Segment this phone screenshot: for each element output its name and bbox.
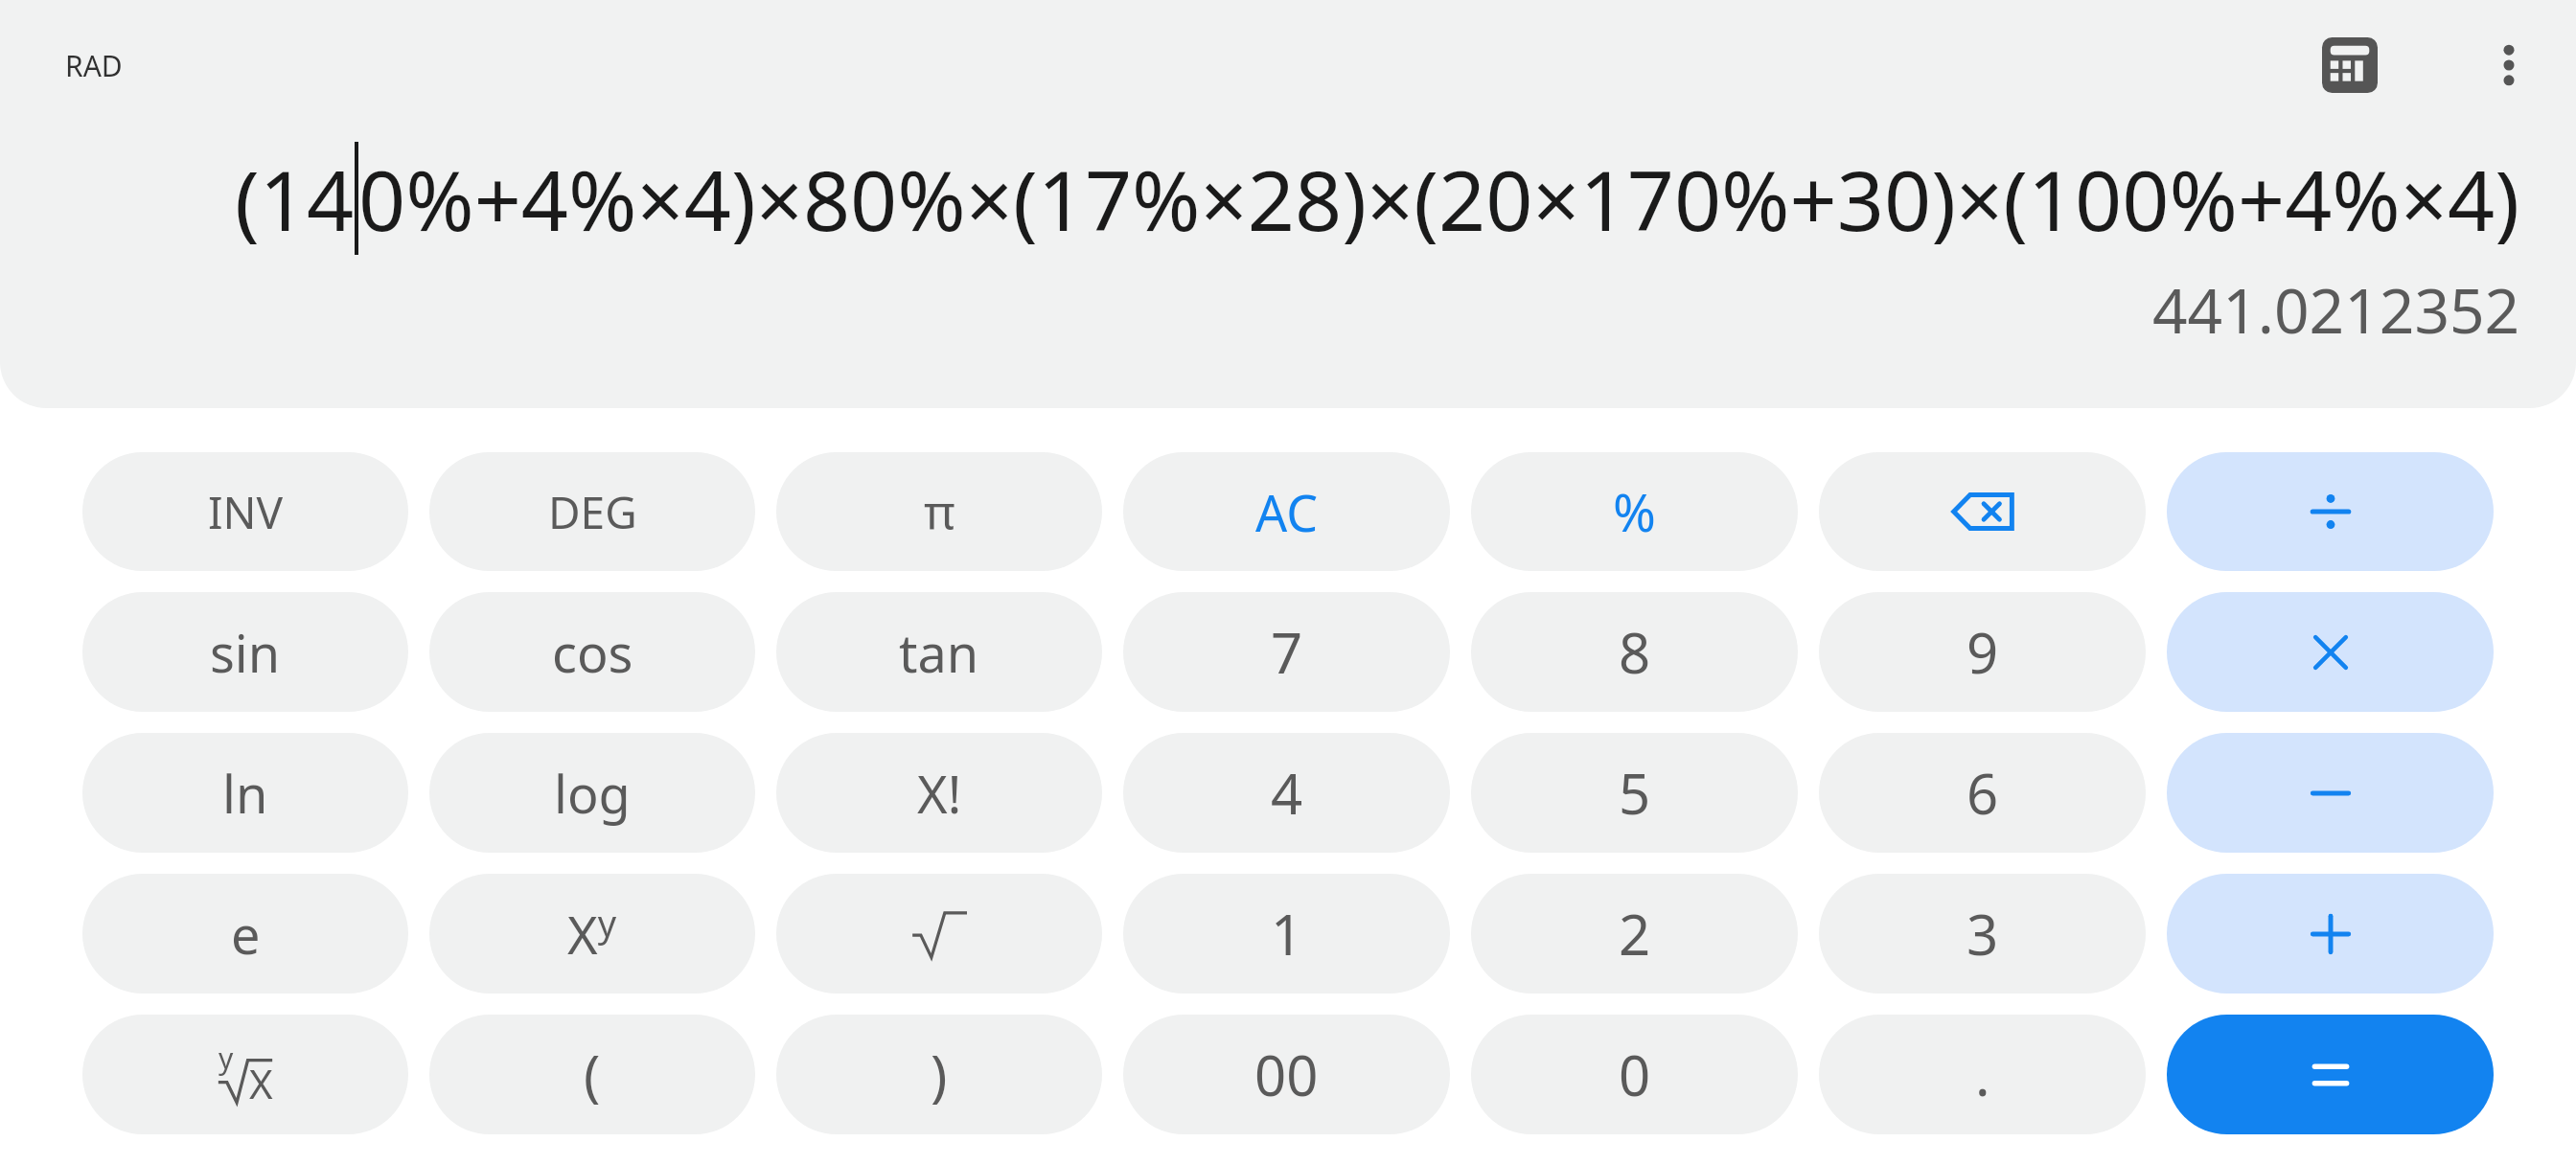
button[interactable]: ( (429, 1015, 755, 1134)
button[interactable]: 0 (1471, 1015, 1798, 1134)
button[interactable]: More options (2471, 27, 2547, 103)
button[interactable]: X! (776, 733, 1102, 853)
staticText: cos (552, 617, 633, 688)
button[interactable]: X to the power of Y (429, 874, 755, 994)
staticText: e (231, 899, 261, 970)
button[interactable]: Minus (2167, 733, 2494, 853)
button[interactable]: e (82, 874, 408, 994)
button[interactable]: Backspace (1819, 452, 2146, 571)
staticText: . (1975, 1037, 1990, 1112)
button[interactable]: cos (429, 592, 755, 712)
button[interactable]: % (1471, 452, 1798, 571)
button[interactable]: 00 (1123, 1015, 1450, 1134)
staticText: AC (1255, 478, 1319, 546)
staticText: log (554, 758, 631, 829)
button[interactable]: 1 (1123, 874, 1450, 994)
staticText: sin (210, 617, 281, 688)
staticText: 1 (1271, 896, 1303, 971)
button[interactable]: sin (82, 592, 408, 712)
button[interactable]: Square root (776, 874, 1102, 994)
staticText: 9 (1966, 614, 1999, 690)
staticText: ( (584, 1037, 601, 1112)
staticText: (14 (235, 143, 355, 255)
button[interactable]: Y-th root of X (82, 1015, 408, 1134)
staticText: 2 (1619, 896, 1651, 971)
staticText: Xy (567, 898, 617, 970)
button[interactable]: 5 (1471, 733, 1798, 853)
button[interactable]: 7 (1123, 592, 1450, 712)
button[interactable]: . (1819, 1015, 2146, 1134)
staticText: 8 (1619, 614, 1651, 690)
button[interactable]: INV (82, 452, 408, 571)
button[interactable]: 9 (1819, 592, 2146, 712)
button[interactable]: RAD (59, 42, 128, 89)
staticText: y (218, 1039, 234, 1078)
button[interactable]: 4 (1123, 733, 1450, 853)
staticText: 0 (1619, 1037, 1651, 1112)
staticText: 6 (1966, 755, 1999, 831)
staticText: ln (222, 758, 268, 829)
staticText: tan (899, 617, 979, 688)
staticText: DEG (548, 482, 637, 542)
staticText: X (249, 1056, 273, 1110)
staticText: RAD (65, 46, 123, 85)
button[interactable]: Plus (2167, 874, 2494, 994)
button[interactable]: 6 (1819, 733, 2146, 853)
staticText: 4 (1271, 755, 1303, 831)
staticText: 0%+4%×4)×80%×(17%×28)×(20×170%+30)×(100%… (358, 143, 2520, 255)
staticText: 5 (1619, 755, 1651, 831)
staticText: INV (208, 482, 284, 542)
button[interactable]: 3 (1819, 874, 2146, 994)
button[interactable]: π (776, 452, 1102, 571)
button[interactable]: 8 (1471, 592, 1798, 712)
button[interactable]: DEG (429, 452, 755, 571)
button[interactable]: ln (82, 733, 408, 853)
button[interactable]: AC (1123, 452, 1450, 571)
button[interactable]: Multiply (2167, 592, 2494, 712)
button[interactable]: Equals (2167, 1015, 2494, 1134)
button[interactable]: log (429, 733, 755, 853)
staticText: π (924, 479, 955, 544)
staticText: X! (917, 758, 962, 829)
staticText: % (1613, 476, 1656, 547)
staticText: 7 (1271, 614, 1303, 690)
staticText: 3 (1966, 896, 1999, 971)
button[interactable]: 2 (1471, 874, 1798, 994)
staticText: ) (931, 1037, 948, 1112)
button[interactable]: tan (776, 592, 1102, 712)
button[interactable]: Calculator mode (2310, 25, 2390, 105)
button[interactable]: ) (776, 1015, 1102, 1134)
button[interactable]: Divide (2167, 452, 2494, 571)
staticText: 441.0212352 (2152, 268, 2520, 352)
staticText: 00 (1254, 1037, 1319, 1112)
